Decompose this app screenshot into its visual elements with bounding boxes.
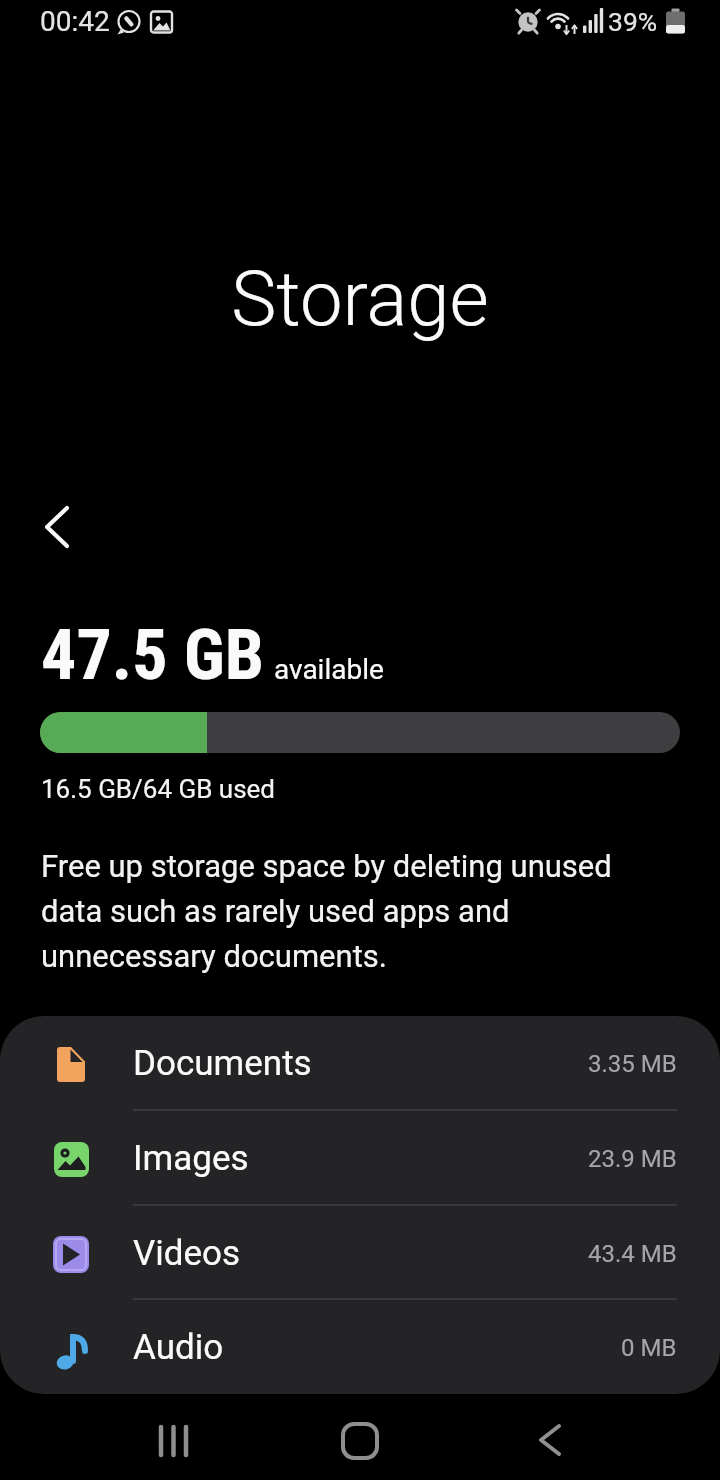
staticText: 0 MB bbox=[621, 1334, 677, 1362]
staticText: Audio bbox=[133, 1327, 224, 1368]
staticText: 00:42 bbox=[40, 5, 110, 38]
staticText: Images bbox=[133, 1138, 249, 1179]
button[interactable] bbox=[322, 1404, 398, 1480]
staticText: 39% bbox=[608, 6, 658, 37]
staticText: Free up storage space by deleting unused… bbox=[41, 848, 612, 974]
staticText: 47.5 GB bbox=[41, 614, 265, 696]
button[interactable] bbox=[135, 1404, 211, 1480]
staticText: Videos bbox=[133, 1233, 241, 1274]
staticText: 16.5 GB/64 GB used bbox=[41, 774, 276, 804]
staticText: 43.4 MB bbox=[588, 1240, 677, 1268]
staticText: available bbox=[274, 653, 384, 686]
button[interactable]: Images bbox=[0, 1111, 720, 1206]
button[interactable] bbox=[30, 496, 86, 552]
staticText: 3.35 MB bbox=[588, 1050, 677, 1078]
button[interactable] bbox=[511, 1404, 587, 1480]
button[interactable]: Documents bbox=[0, 1016, 720, 1111]
button[interactable]: Videos bbox=[0, 1206, 720, 1301]
staticText: Storage bbox=[0, 254, 720, 343]
button[interactable]: Audio bbox=[0, 1301, 720, 1394]
staticText: Documents bbox=[133, 1043, 312, 1084]
staticText: 23.9 MB bbox=[588, 1145, 677, 1173]
